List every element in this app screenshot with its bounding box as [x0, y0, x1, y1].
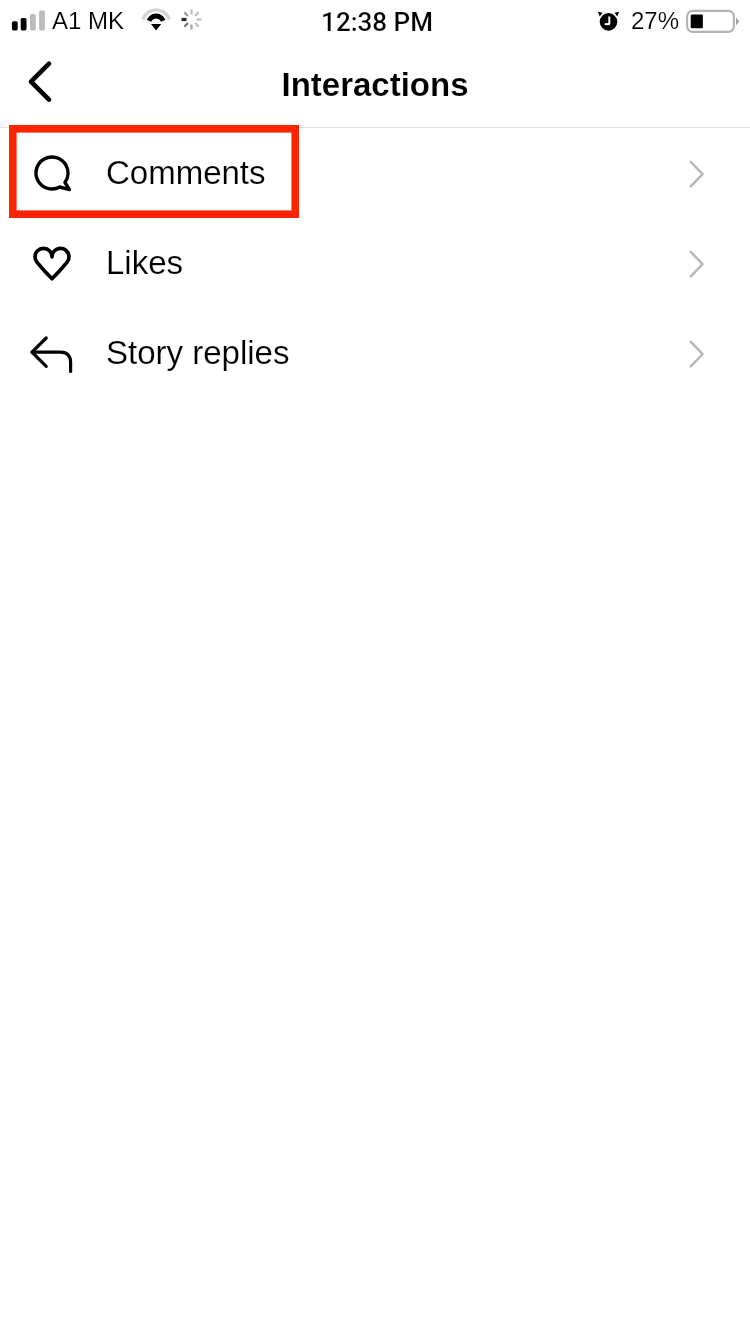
staticText: Story replies — [106, 334, 290, 371]
staticText: Interactions — [0, 66, 750, 103]
staticText: 27% — [631, 7, 680, 34]
button[interactable]: Story replies — [0, 308, 750, 398]
button[interactable]: Likes — [0, 218, 750, 308]
staticText: A1 MK — [52, 7, 125, 34]
button[interactable]: Back — [8, 56, 66, 114]
staticText: 12:38 PM — [2, 7, 750, 37]
staticText: Likes — [106, 244, 184, 281]
button[interactable]: Comments — [0, 128, 750, 218]
staticText: Comments — [106, 154, 266, 191]
